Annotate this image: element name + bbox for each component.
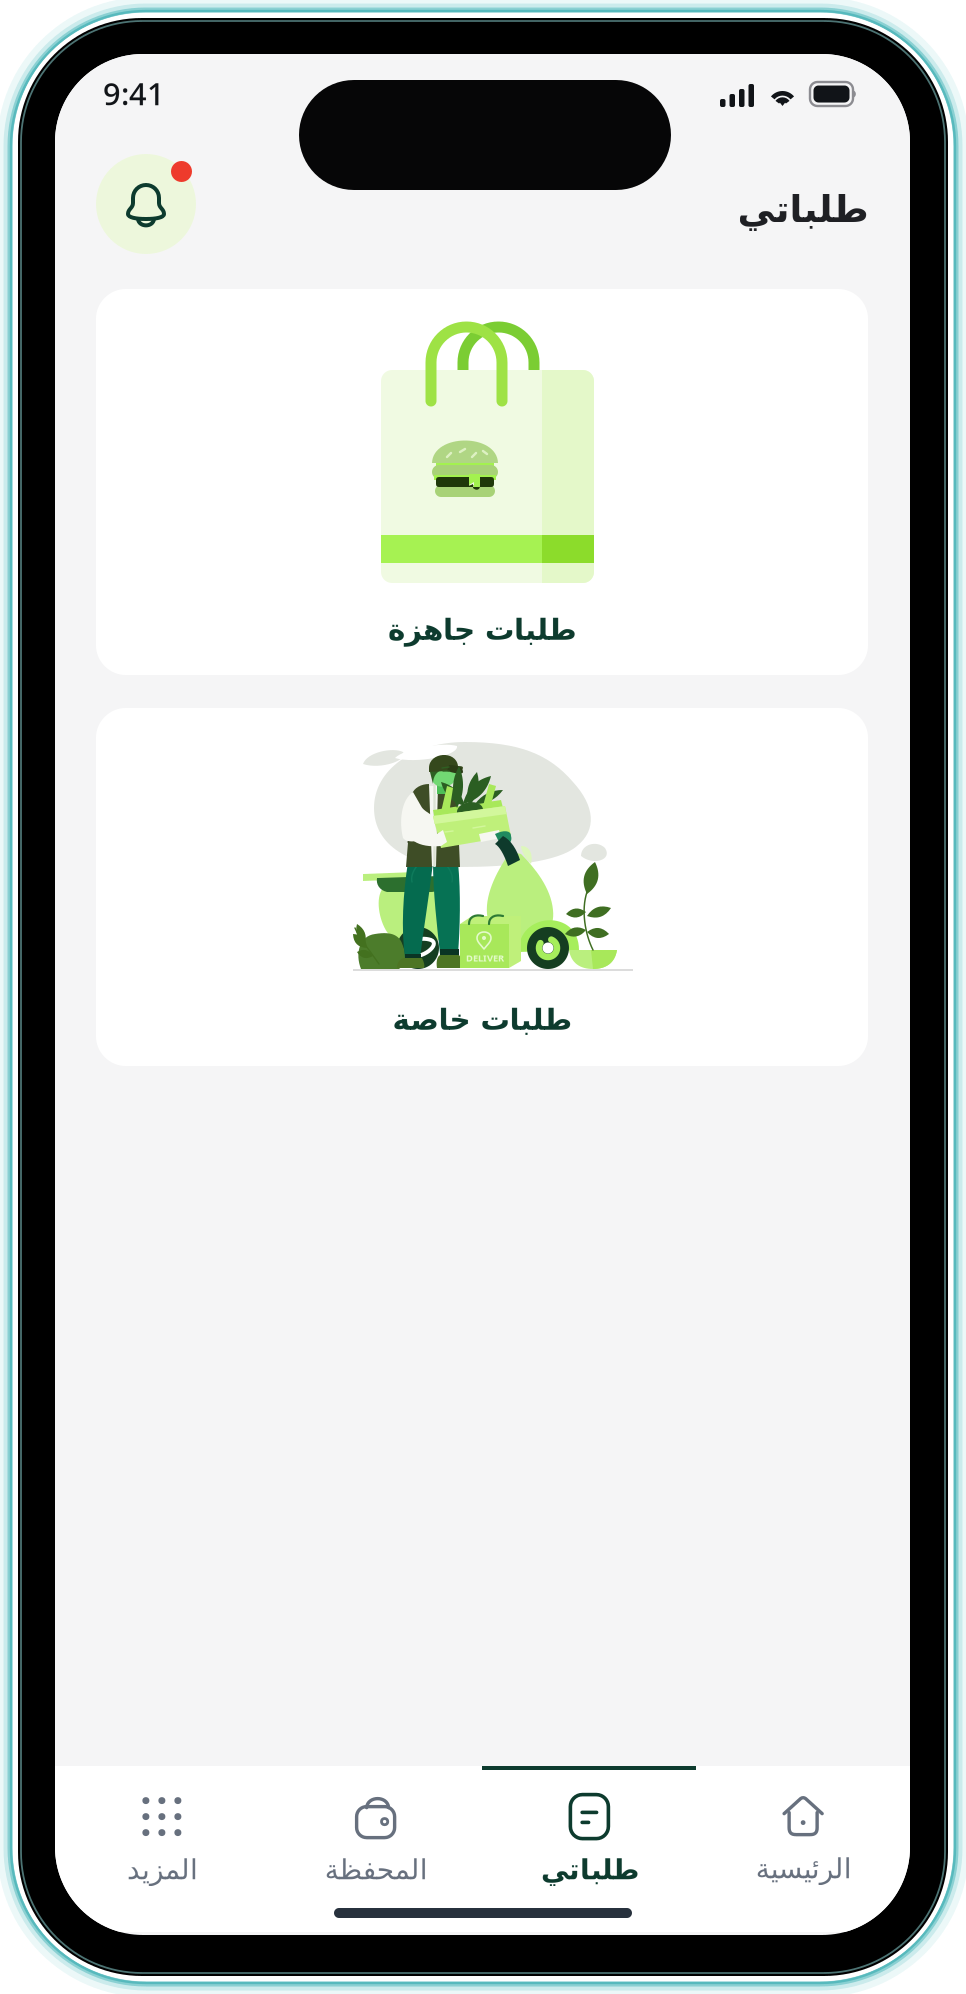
button[interactable]: الرئيسية <box>696 1780 910 1900</box>
staticText: طلبات جاهزة <box>387 613 576 646</box>
button[interactable]: طلباتي <box>482 1780 696 1900</box>
button[interactable]: طلبات جاهزة <box>96 289 868 675</box>
staticText: طلباتي <box>737 188 868 230</box>
staticText: DELIVER <box>466 952 504 964</box>
button[interactable]: DELIVER <box>96 708 868 1066</box>
staticText: المزيد <box>126 1854 197 1885</box>
staticText: طلبات خاصة <box>392 1003 572 1036</box>
staticText: المحفظة <box>324 1854 427 1885</box>
staticText: 9:41 <box>103 73 165 114</box>
button[interactable]: Notifications <box>96 154 198 256</box>
staticText: الرئيسية <box>755 1853 851 1884</box>
button[interactable]: المزيد <box>55 1780 269 1900</box>
button[interactable]: المحفظة <box>269 1780 483 1900</box>
staticText: طلباتي <box>540 1854 638 1885</box>
